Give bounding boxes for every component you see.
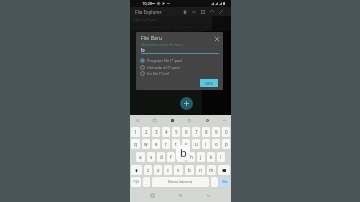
staticText: m	[209, 167, 214, 173]
button[interactable]: Backspace	[218, 165, 230, 175]
button[interactable]: Home	[175, 190, 186, 201]
button[interactable]: d	[157, 152, 165, 162]
staticText: 6	[185, 129, 188, 135]
button[interactable]: Back	[203, 190, 214, 201]
button[interactable]: GIF	[150, 116, 158, 124]
button[interactable]: Home	[180, 7, 189, 16]
staticText: 3	[155, 129, 158, 135]
button[interactable]: Program file (*.pas)	[140, 57, 183, 63]
button[interactable]: 9	[212, 127, 220, 137]
staticText: i	[205, 141, 207, 147]
button[interactable]: 2	[142, 127, 150, 137]
button[interactable]: Undo	[207, 7, 216, 16]
button[interactable]: Search	[133, 116, 141, 124]
button[interactable]: Ini file (*.ini)	[140, 70, 170, 76]
staticText: k	[210, 154, 213, 160]
button[interactable]: Close	[213, 35, 220, 42]
button[interactable]: 7	[192, 127, 200, 137]
button[interactable]: View mode	[198, 7, 207, 16]
button[interactable]: y	[182, 139, 190, 149]
button[interactable]: r	[162, 139, 170, 149]
button[interactable]: 6	[182, 127, 190, 137]
button[interactable]: o	[212, 139, 220, 149]
button[interactable]: ,	[143, 177, 150, 187]
button[interactable]: Unicode of (*.pas)	[140, 64, 180, 70]
button[interactable]: h	[187, 152, 195, 162]
button[interactable]: Settings	[203, 116, 211, 124]
staticText: j	[200, 154, 202, 160]
button[interactable]: n	[196, 165, 205, 175]
button[interactable]: Sticker	[168, 116, 176, 124]
staticText: Oke	[222, 180, 228, 184]
button[interactable]: l	[217, 152, 225, 162]
staticText: ?123	[133, 180, 140, 184]
button[interactable]: x	[154, 165, 162, 175]
staticText: h	[190, 154, 193, 160]
button[interactable]: s	[147, 152, 155, 162]
staticText: 1	[134, 129, 137, 135]
button[interactable]: 5	[172, 127, 180, 137]
button[interactable]: Clipboard	[185, 116, 193, 124]
button[interactable]: a	[136, 152, 145, 162]
button[interactable]: u	[192, 139, 200, 149]
button[interactable]: 0	[222, 127, 230, 137]
button[interactable]: 8	[202, 127, 210, 137]
staticText: y	[185, 141, 188, 147]
staticText: o	[215, 141, 218, 147]
button[interactable]: Edit	[216, 7, 225, 16]
button[interactable]: e	[152, 139, 160, 149]
staticText: r	[165, 141, 167, 147]
staticText: Masukkan nama file baru	[141, 42, 184, 47]
button[interactable]: q	[131, 139, 140, 149]
staticText: f	[170, 154, 172, 160]
button[interactable]: k	[207, 152, 215, 162]
button[interactable]: ?123	[131, 177, 141, 187]
staticText: p	[225, 141, 228, 147]
staticText: l	[220, 154, 222, 160]
staticText: b	[188, 167, 191, 173]
staticText: b	[141, 46, 145, 54]
button[interactable]: b	[185, 165, 194, 175]
button[interactable]: 1	[131, 127, 140, 137]
button[interactable]: New file	[180, 97, 193, 110]
staticText: .	[214, 180, 215, 185]
button[interactable]: z	[144, 165, 152, 175]
staticText: 8	[205, 129, 208, 135]
button[interactable]: .	[211, 177, 218, 187]
button[interactable]: i	[202, 139, 210, 149]
button[interactable]: Collapse	[189, 7, 198, 16]
button[interactable]: t	[172, 139, 180, 149]
button[interactable]: Filter by Name	[130, 16, 212, 23]
staticText: File Explorer	[135, 9, 180, 15]
button[interactable]: w	[142, 139, 150, 149]
staticText: 5	[175, 129, 178, 135]
button[interactable]: j	[197, 152, 205, 162]
staticText: w	[144, 141, 148, 147]
button[interactable]: Shift	[131, 165, 142, 175]
button[interactable]: Recents	[147, 190, 158, 201]
button[interactable]: 4	[162, 127, 170, 137]
button[interactable]: More	[220, 116, 228, 124]
button[interactable]: Bahasa Indonesia	[152, 177, 209, 187]
button[interactable]: p	[222, 139, 230, 149]
button[interactable]: m	[207, 165, 216, 175]
staticText: v	[177, 167, 180, 173]
button[interactable]: f	[167, 152, 175, 162]
staticText: OKE	[205, 81, 213, 86]
staticText: e	[155, 141, 158, 147]
button[interactable]: v	[174, 165, 183, 175]
button[interactable]: g	[177, 152, 185, 162]
staticText: g	[180, 154, 183, 160]
staticText: 4	[165, 129, 168, 135]
staticText: d	[160, 154, 163, 160]
staticText: Ini file (*.ini)	[147, 71, 170, 76]
staticText: 7	[195, 129, 198, 135]
staticText: 0	[225, 129, 228, 135]
button[interactable]: c	[164, 165, 172, 175]
button[interactable]: Oke	[220, 177, 230, 187]
button[interactable]: 3	[152, 127, 160, 137]
button[interactable]: OKE	[200, 79, 218, 87]
staticText: File Baru	[141, 35, 163, 42]
